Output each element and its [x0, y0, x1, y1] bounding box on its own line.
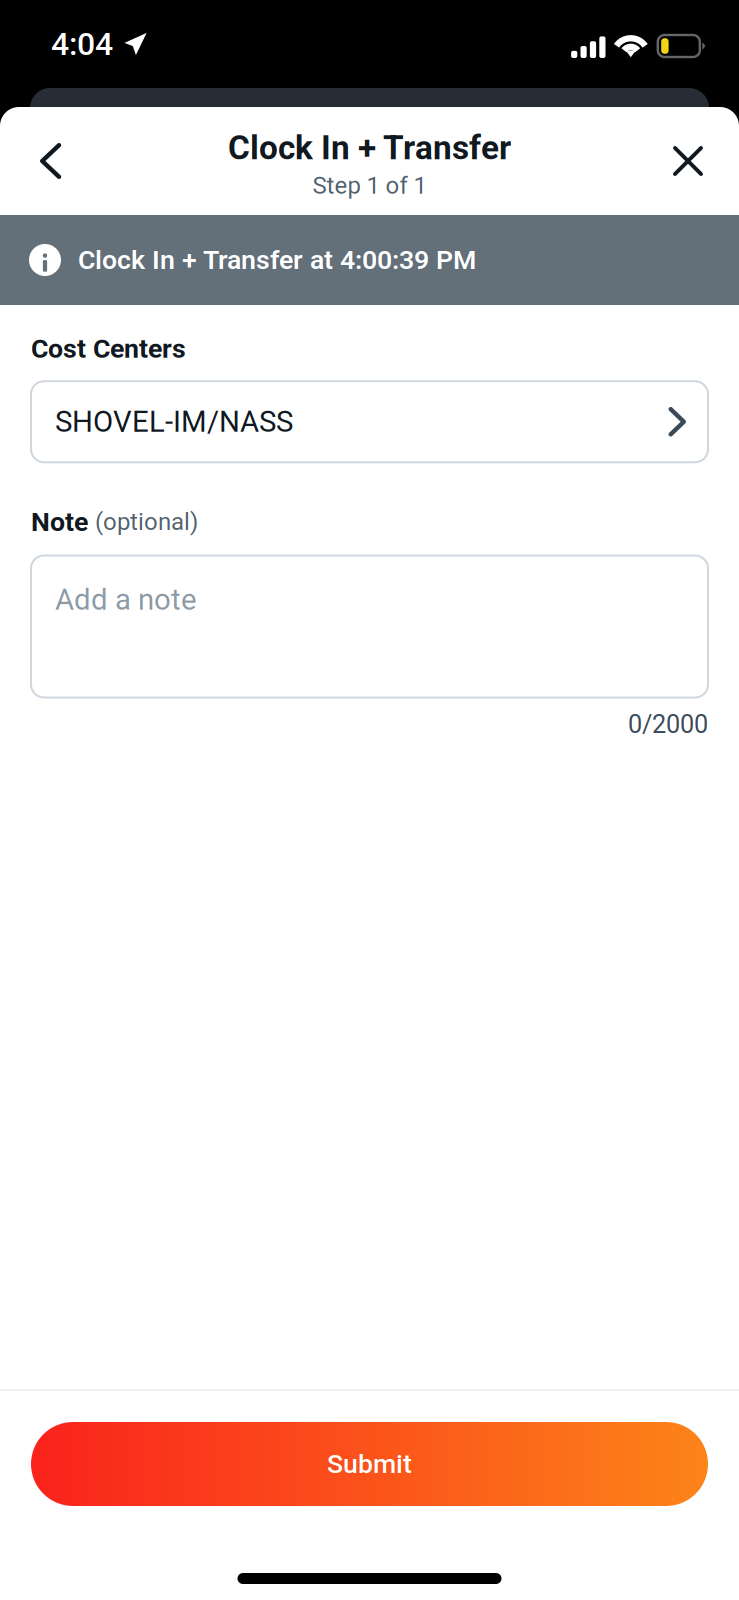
staticText: Cost Centers [31, 333, 186, 364]
staticText: Note [31, 506, 88, 538]
staticText: Submit [327, 1448, 412, 1480]
button[interactable]: Back [0, 119, 87, 203]
staticText: Clock In + Transfer [228, 128, 511, 167]
button[interactable]: Submit [31, 1422, 708, 1506]
staticText: Clock In + Transfer at 4:00:39 PM [78, 244, 476, 276]
button[interactable]: Close [647, 119, 739, 203]
staticText: (optional) [95, 508, 198, 536]
staticText: SHOVEL-IM/NASS [55, 405, 293, 439]
staticText: Add a note [55, 582, 197, 617]
staticText: Step 1 of 1 [312, 171, 426, 200]
button[interactable]: SHOVEL-IM/NASS [31, 381, 708, 462]
staticText: 4:04 [51, 25, 113, 63]
staticText: 0/2000 [628, 709, 708, 739]
